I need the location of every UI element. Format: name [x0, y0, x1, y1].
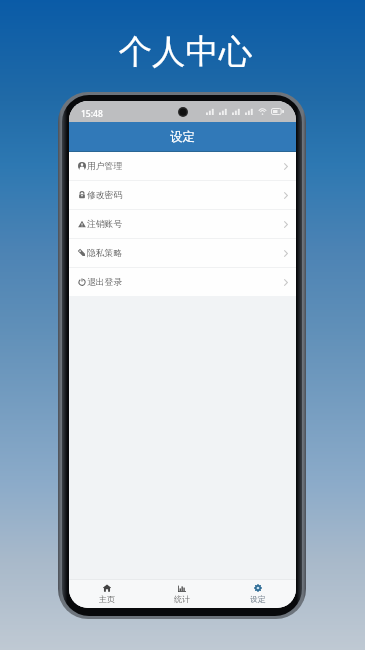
button[interactable]: 统计 [144, 580, 220, 608]
button[interactable]: 注销账号 [69, 210, 296, 238]
staticText: 隐私策略 [87, 248, 123, 259]
button[interactable]: 退出登录 [69, 268, 296, 296]
staticText: 15:48 [81, 108, 103, 120]
staticText: 个人中心 [3, 31, 365, 73]
button[interactable]: 设定 [220, 580, 296, 608]
button[interactable]: 隐私策略 [69, 239, 296, 267]
button[interactable]: 用户管理 [69, 152, 296, 180]
staticText: 设定 [250, 594, 266, 604]
button[interactable]: 主页 [69, 580, 144, 608]
staticText: 主页 [99, 594, 115, 604]
staticText: 注销账号 [87, 219, 123, 230]
staticText: 退出登录 [87, 277, 123, 288]
staticText: 用户管理 [87, 161, 123, 172]
button[interactable]: 修改密码 [69, 181, 296, 209]
staticText: 修改密码 [87, 190, 123, 201]
staticText: 统计 [174, 594, 190, 604]
staticText: 设定 [170, 129, 195, 145]
